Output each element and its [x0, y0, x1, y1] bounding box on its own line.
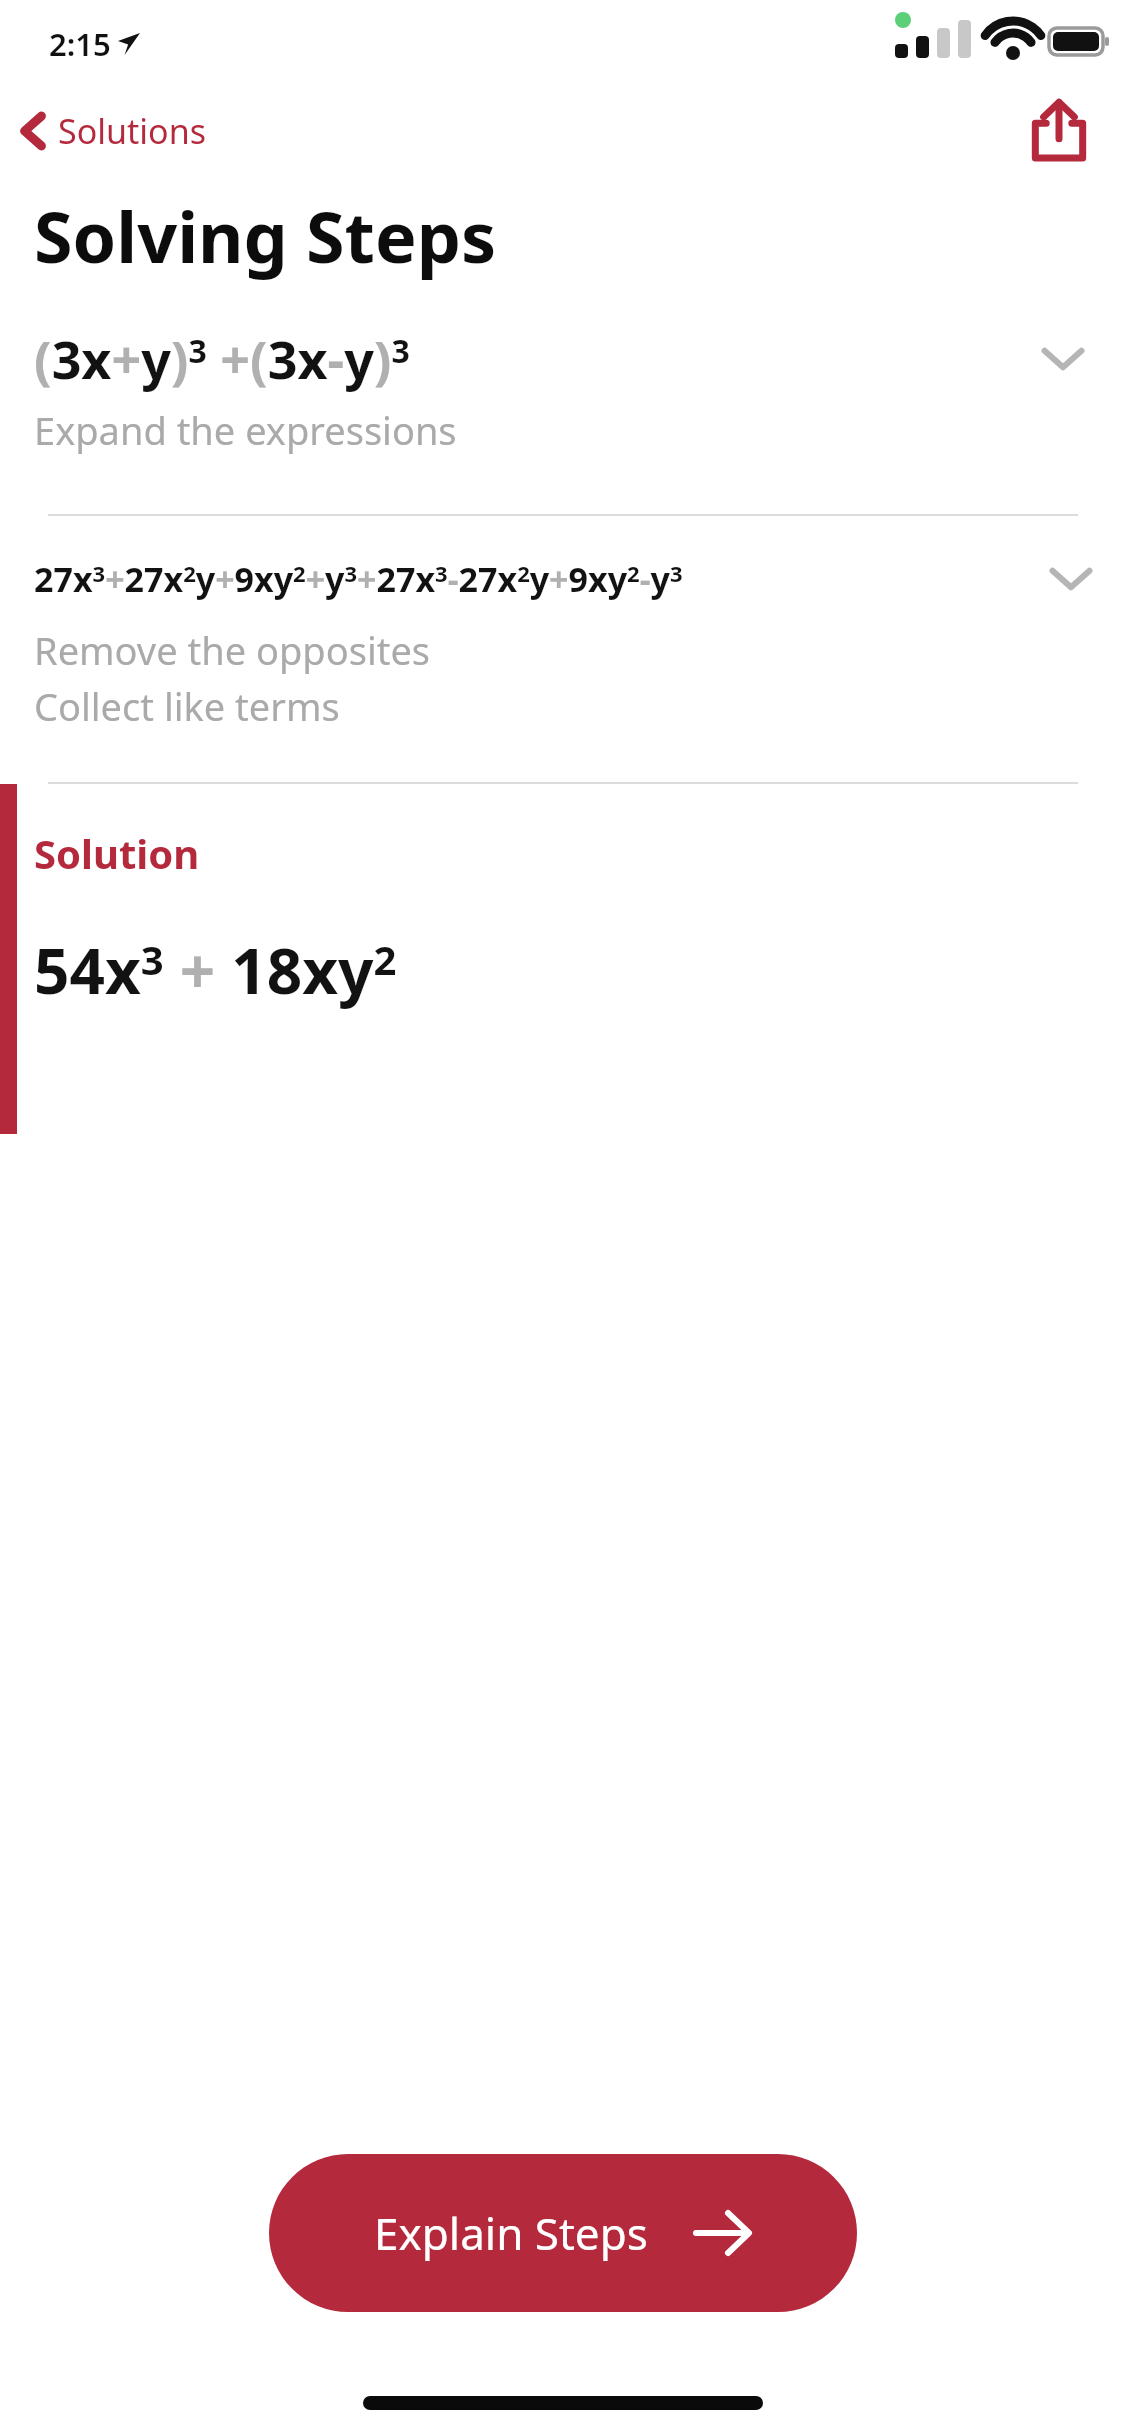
button[interactable]: Explain Steps: [269, 2154, 857, 2312]
button[interactable]: Expand step: [1039, 552, 1103, 606]
staticText: Remove the opposites: [34, 624, 431, 676]
button[interactable]: Solutions: [0, 102, 224, 160]
staticText: Collect like terms: [34, 680, 340, 732]
staticText: 54x3 + 18xy2: [34, 928, 397, 1012]
button[interactable]: Expand step: [1031, 332, 1095, 386]
staticText: Solving Steps: [34, 188, 497, 283]
staticText: Explain Steps: [374, 2203, 648, 2263]
staticText: Expand the expressions: [34, 404, 457, 456]
button[interactable]: (3x+y)3 +(3x-y)3: [0, 323, 1125, 514]
staticText: Solutions: [58, 108, 206, 154]
staticText: Solution: [34, 826, 200, 880]
staticText: 27x3+27x2y+9xy2+y3+27x3-27x2y+9xy2-y3: [34, 556, 1039, 602]
staticText: (3x+y)3 +(3x-y)3: [34, 323, 1031, 394]
button[interactable]: Share: [1027, 99, 1091, 163]
button[interactable]: 27x3+27x2y+9xy2+y3+27x3-27x2y+9xy2-y3: [0, 516, 1125, 782]
staticText: 2:15: [49, 23, 111, 65]
